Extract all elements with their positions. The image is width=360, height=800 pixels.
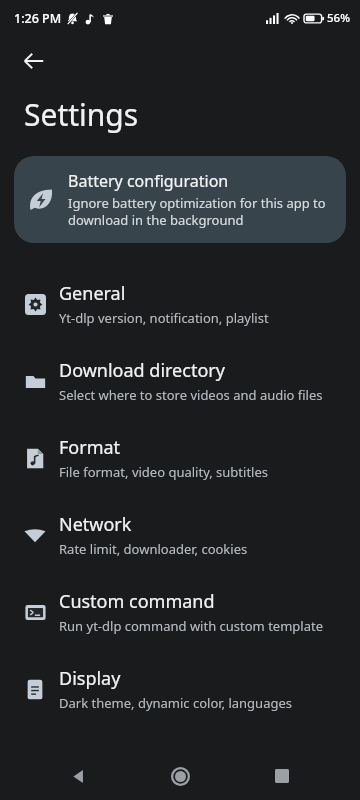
button[interactable]: Back bbox=[12, 39, 56, 83]
button[interactable]: Display bbox=[0, 650, 360, 727]
staticText: Custom command bbox=[59, 589, 215, 614]
staticText: Display bbox=[59, 666, 121, 691]
staticText: Network bbox=[59, 512, 132, 537]
staticText: Settings bbox=[24, 94, 139, 135]
button[interactable]: Battery configuration bbox=[14, 156, 346, 243]
staticText: File format, video quality, subtitles bbox=[59, 463, 269, 481]
staticText: 56% bbox=[327, 10, 350, 26]
staticText: General bbox=[59, 281, 126, 306]
staticText: Battery configuration bbox=[68, 170, 229, 192]
button[interactable]: Custom command bbox=[0, 573, 360, 650]
staticText: Yt-dlp version, notification, playlist bbox=[59, 309, 269, 327]
staticText: 1:26 PM bbox=[14, 10, 62, 27]
staticText: Run yt-dlp command with custom template bbox=[59, 617, 324, 635]
staticText: Rate limit, downloader, cookies bbox=[59, 540, 248, 558]
staticText: Download directory bbox=[59, 358, 225, 383]
staticText: Select where to store videos and audio f… bbox=[59, 386, 323, 404]
button[interactable]: Download directory bbox=[0, 342, 360, 419]
staticText: Format bbox=[59, 435, 121, 460]
button[interactable]: Home bbox=[156, 752, 204, 800]
staticText: Ignore battery optimization for this app… bbox=[68, 194, 330, 229]
button[interactable]: Network bbox=[0, 496, 360, 573]
button[interactable]: Recent apps bbox=[258, 752, 306, 800]
button[interactable]: General bbox=[0, 265, 360, 342]
button[interactable]: Format bbox=[0, 419, 360, 496]
staticText: Dark theme, dynamic color, languages bbox=[59, 694, 292, 712]
button[interactable]: Back bbox=[54, 752, 102, 800]
